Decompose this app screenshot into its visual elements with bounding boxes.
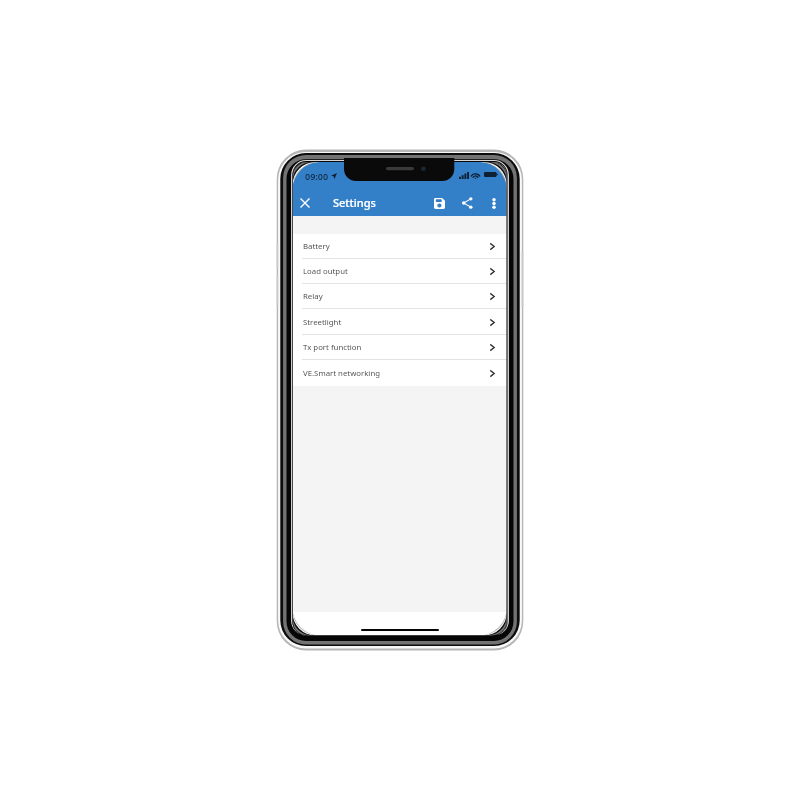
button[interactable]: Save <box>428 192 450 214</box>
staticText: Streetlight <box>303 317 342 328</box>
staticText: Settings <box>333 195 376 210</box>
staticText: 09:00 <box>305 170 329 182</box>
button[interactable]: Close <box>296 194 314 212</box>
button[interactable]: VE.Smart networking <box>293 360 507 386</box>
button[interactable]: Tx port function <box>293 335 507 360</box>
button[interactable]: Relay <box>293 284 507 309</box>
staticText: VE.Smart networking <box>303 368 380 379</box>
staticText: Battery <box>303 241 330 252</box>
button[interactable]: Streetlight <box>293 309 507 335</box>
button[interactable]: Share <box>456 192 478 214</box>
button[interactable]: Battery <box>293 234 507 259</box>
button[interactable]: More options <box>483 192 505 214</box>
staticText: Tx port function <box>303 342 362 353</box>
staticText: Relay <box>303 291 323 302</box>
staticText: Load output <box>303 266 348 277</box>
button[interactable]: Load output <box>293 259 507 284</box>
